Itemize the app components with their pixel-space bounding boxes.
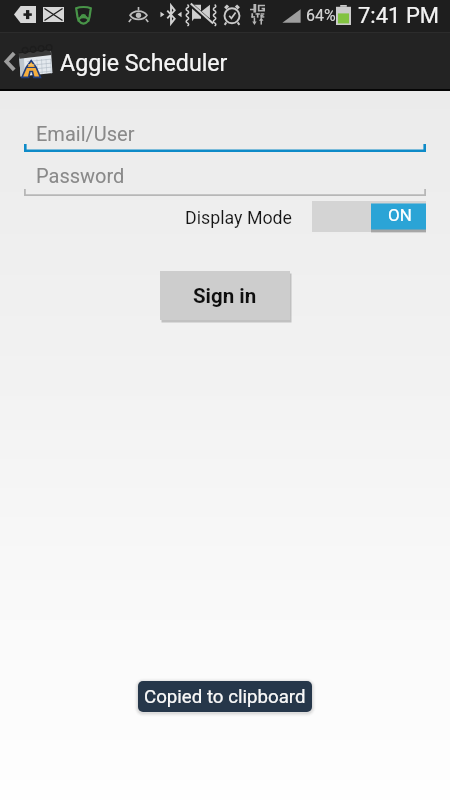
- staticText: Sign in: [193, 284, 257, 308]
- staticText: Password: [36, 164, 125, 187]
- button[interactable]: Password: [24, 164, 426, 198]
- staticText: 7:41 PM: [358, 3, 439, 29]
- button[interactable]: Sign in: [160, 271, 290, 320]
- button[interactable]: Email/User: [24, 122, 426, 156]
- staticText: Email/User: [36, 122, 135, 145]
- staticText: Aggie Scheduler: [60, 49, 228, 76]
- staticText: Display Mode: [185, 207, 293, 228]
- button[interactable]: Navigate up: [0, 32, 56, 89]
- staticText: Copied to clipboard: [144, 686, 306, 708]
- button[interactable]: Display Mode, on: [312, 201, 426, 232]
- staticText: 64%: [306, 6, 336, 25]
- staticText: ON: [388, 205, 412, 225]
